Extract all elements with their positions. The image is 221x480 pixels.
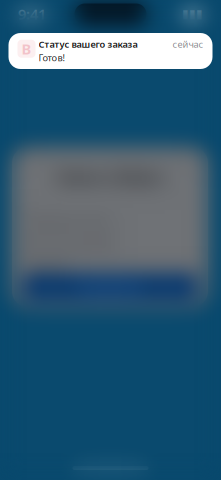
staticText: Подробнее [76,279,144,295]
button[interactable]: Подробнее [22,273,198,301]
staticText: Сумма [26,257,65,273]
staticText: сейчас [172,38,203,50]
staticText: 9:41 [18,4,46,24]
button[interactable]: B [8,33,212,69]
staticText: Статус вашего заказа [38,38,137,50]
staticText: Готов! [38,51,65,64]
staticText: B [21,39,31,58]
staticText: ▮▮▮ [182,7,203,21]
